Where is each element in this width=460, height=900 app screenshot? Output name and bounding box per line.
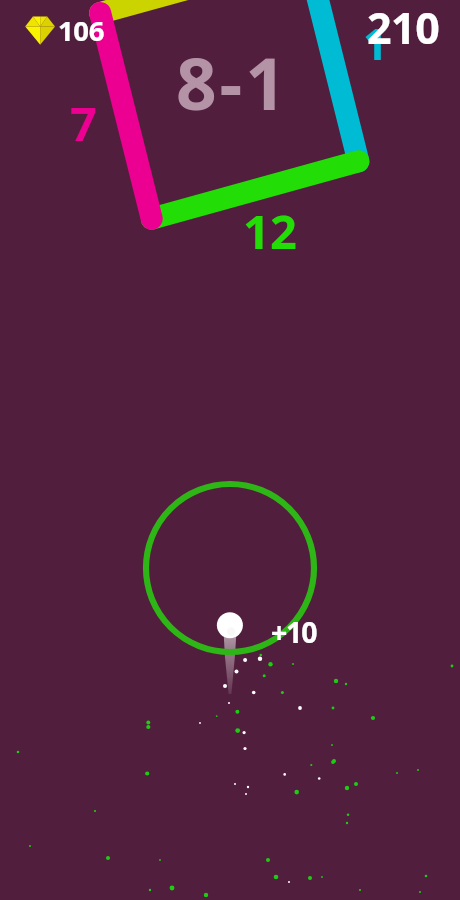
button[interactable]: Tap to launch the ball [0,0,460,900]
button[interactable]: Gems: 106 [18,6,110,50]
button[interactable]: Score: 210 [358,0,450,50]
